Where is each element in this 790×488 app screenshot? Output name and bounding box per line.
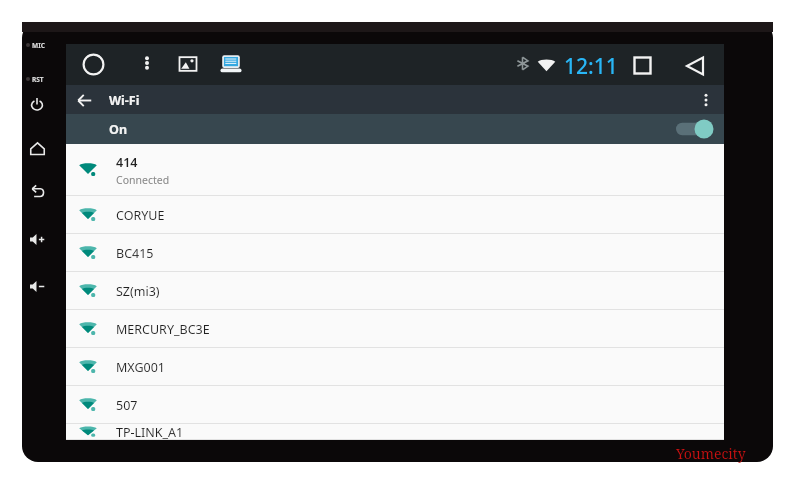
staticText: Youmecity <box>676 444 746 463</box>
button[interactable]: Volume down <box>26 275 48 297</box>
staticText: SZ(mi3) <box>116 283 160 300</box>
button[interactable]: Home ring <box>82 53 105 76</box>
button[interactable]: Back <box>27 182 47 202</box>
staticText: 507 <box>116 397 138 414</box>
button[interactable]: Volume up <box>26 228 48 250</box>
button[interactable]: BC415 <box>66 234 724 272</box>
staticText: 414 <box>116 154 138 171</box>
button[interactable]: Gallery <box>178 54 198 74</box>
staticText: BC415 <box>116 245 154 262</box>
staticText: TP-LINK_A1 <box>116 424 184 440</box>
staticText: MERCURY_BC3E <box>116 321 210 338</box>
staticText: RST <box>32 75 44 84</box>
button[interactable]: MXG001 <box>66 348 724 386</box>
button[interactable]: More options <box>136 52 158 74</box>
staticText: MXG001 <box>116 359 165 376</box>
staticText: CORYUE <box>116 207 165 224</box>
button[interactable]: MERCURY_BC3E <box>66 310 724 348</box>
button[interactable]: TP-LINK_A1 <box>66 424 724 440</box>
button[interactable]: Home <box>28 139 46 157</box>
button[interactable]: Back <box>683 54 706 77</box>
button[interactable]: SZ(mi3) <box>66 272 724 310</box>
staticText: Wi-Fi <box>109 92 140 109</box>
button[interactable]: Power <box>28 96 46 114</box>
staticText: 12:11 <box>564 52 618 81</box>
button[interactable]: Screenshot <box>219 52 243 76</box>
staticText: MIC <box>32 41 45 50</box>
button[interactable]: Wi-Fi toggle <box>674 119 718 139</box>
button[interactable]: Navigate up <box>72 88 96 112</box>
staticText: On <box>109 121 128 138</box>
button[interactable]: 507 <box>66 386 724 424</box>
button[interactable]: On <box>66 114 724 144</box>
button[interactable]: More options <box>694 88 718 112</box>
staticText: Connected <box>116 173 170 187</box>
button[interactable]: CORYUE <box>66 196 724 234</box>
button[interactable]: Recent apps <box>631 54 653 76</box>
button[interactable]: 414 <box>66 144 724 196</box>
